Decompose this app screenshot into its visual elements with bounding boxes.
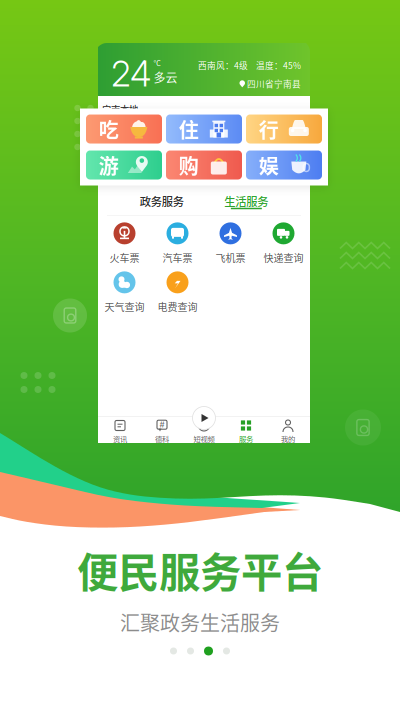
button[interactable]: 短视频 bbox=[183, 416, 225, 443]
button[interactable]: 购 bbox=[166, 150, 242, 179]
button[interactable]: 娱 bbox=[246, 150, 322, 179]
staticText: 电费查询 bbox=[157, 299, 197, 314]
button[interactable]: 住 bbox=[166, 114, 242, 143]
staticText: ℃ bbox=[153, 57, 160, 68]
button[interactable]: # bbox=[141, 416, 183, 443]
button[interactable]: 火车票 bbox=[98, 226, 151, 262]
staticText: 行 bbox=[259, 114, 279, 143]
staticText: 火车票 bbox=[109, 250, 139, 265]
staticText: 我的 bbox=[281, 433, 295, 444]
staticText: 资讯 bbox=[113, 433, 127, 444]
staticText: 政务服务 bbox=[140, 193, 184, 209]
staticText: 吃 bbox=[99, 114, 119, 143]
button[interactable]: 我的 bbox=[267, 416, 309, 443]
staticText: 便民服务平台 bbox=[77, 540, 323, 599]
staticText: 住 bbox=[179, 114, 199, 143]
staticText: 西南风：4级 温度：45% bbox=[198, 59, 301, 71]
button[interactable]: 汽车票 bbox=[151, 226, 204, 262]
button[interactable]: 电费查询 bbox=[151, 275, 204, 311]
staticText: 汇聚政务生活服务 bbox=[120, 607, 280, 636]
button[interactable]: 飞机票 bbox=[204, 226, 257, 262]
button[interactable]: 行 bbox=[246, 114, 322, 143]
staticText: 快递查询 bbox=[263, 250, 303, 265]
staticText: 短视频 bbox=[193, 433, 214, 444]
staticText: 生活服务 bbox=[224, 193, 268, 209]
button[interactable]: 游 bbox=[86, 150, 162, 179]
button[interactable]: 政务服务 bbox=[132, 190, 192, 212]
staticText: 娱 bbox=[259, 150, 279, 179]
button[interactable]: 服务 bbox=[225, 416, 267, 443]
staticText: 宁南本地 bbox=[102, 102, 138, 116]
staticText: 服务 bbox=[239, 433, 253, 444]
staticText: 德科 bbox=[155, 433, 169, 444]
staticText: 多云 bbox=[153, 69, 177, 86]
button[interactable]: 吃 bbox=[86, 114, 162, 143]
staticText: 汽车票 bbox=[162, 250, 192, 265]
staticText: 游 bbox=[99, 150, 119, 179]
staticText: # bbox=[159, 420, 164, 429]
button[interactable]: 天气查询 bbox=[98, 275, 151, 311]
staticText: 24 bbox=[111, 53, 151, 95]
button[interactable]: 快递查询 bbox=[257, 226, 310, 262]
staticText: 飞机票 bbox=[215, 250, 245, 265]
button[interactable]: 生活服务 bbox=[216, 190, 276, 212]
staticText: 天气查询 bbox=[104, 299, 144, 314]
button[interactable]: 资讯 bbox=[99, 416, 141, 443]
staticText: 四川省宁南县 bbox=[247, 77, 301, 90]
staticText: 购 bbox=[179, 150, 199, 179]
button[interactable]: 短视频 bbox=[192, 406, 215, 429]
